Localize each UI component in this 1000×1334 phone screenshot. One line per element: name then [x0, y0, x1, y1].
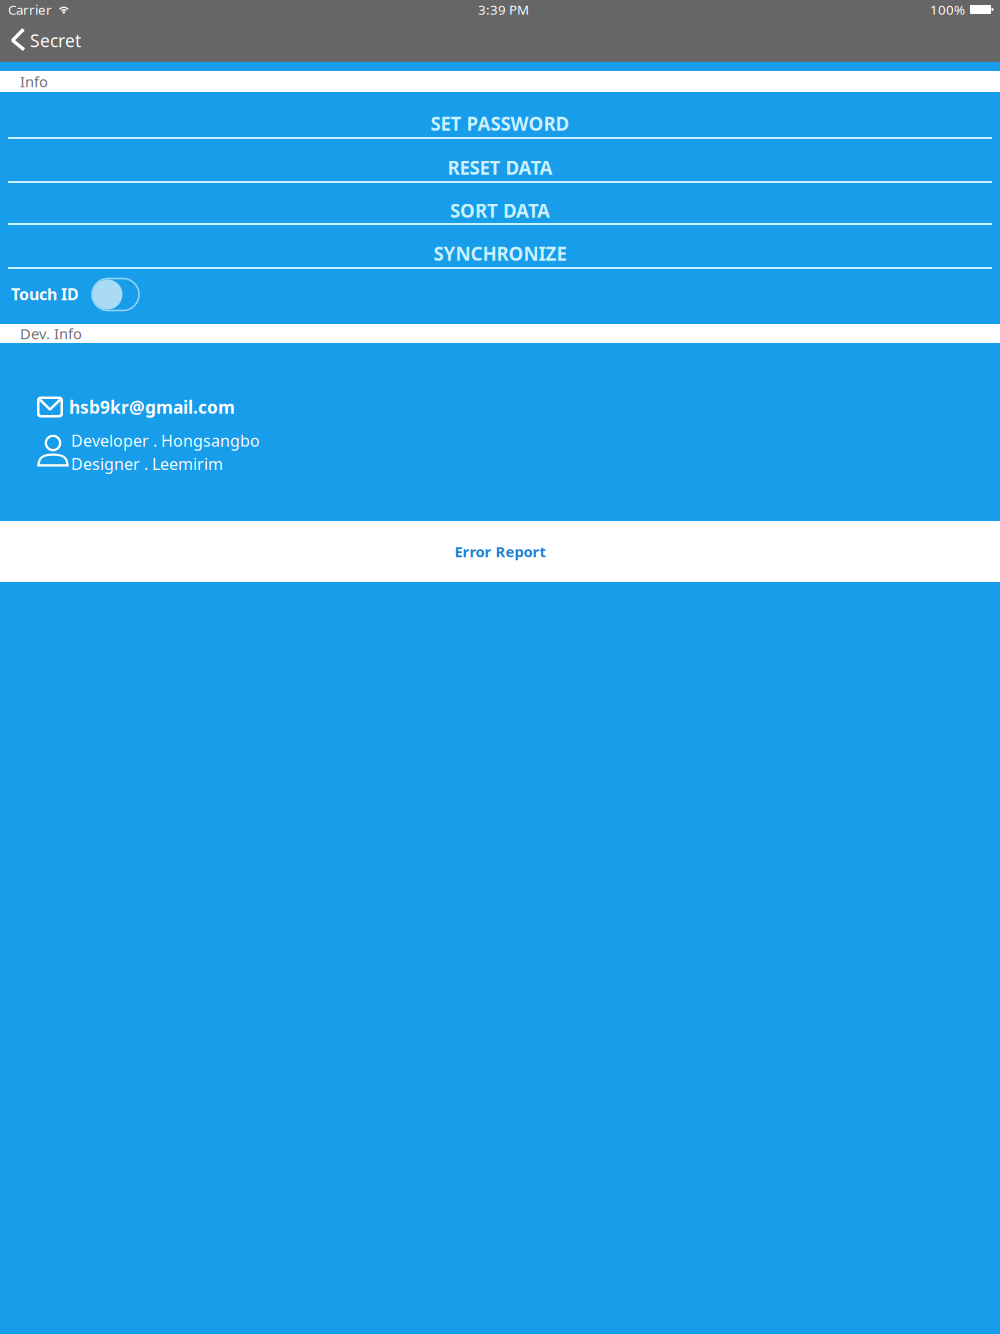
button[interactable]: Error Report — [0, 521, 1000, 582]
staticText: hsb9kr@gmail.com — [69, 395, 235, 418]
button[interactable]: hsb9kr@gmail.com — [0, 397, 1000, 417]
button[interactable]: SET PASSWORD — [0, 92, 1000, 139]
staticText: Developer . Hongsangbo — [71, 430, 260, 451]
button[interactable]: Touch ID — [79, 275, 147, 317]
button[interactable]: RESET DATA — [0, 139, 1000, 183]
button[interactable]: SORT DATA — [0, 183, 1000, 225]
button[interactable]: SYNCHRONIZE — [0, 225, 1000, 269]
staticText: Info — [20, 72, 48, 91]
staticText: Secret — [30, 29, 81, 52]
button[interactable]: Secret — [0, 19, 93, 62]
staticText: RESET DATA — [447, 155, 552, 180]
staticText: Designer . Leemirim — [71, 453, 223, 474]
staticText: SET PASSWORD — [430, 111, 569, 136]
staticText: Dev. Info — [20, 324, 82, 343]
staticText: 100% — [930, 1, 965, 18]
staticText: Error Report — [454, 542, 545, 561]
staticText: SORT DATA — [450, 198, 550, 223]
staticText: SYNCHRONIZE — [433, 241, 566, 266]
staticText: 3:39 PM — [478, 1, 529, 18]
staticText: Touch ID — [11, 283, 79, 305]
staticText: Carrier — [8, 1, 52, 18]
